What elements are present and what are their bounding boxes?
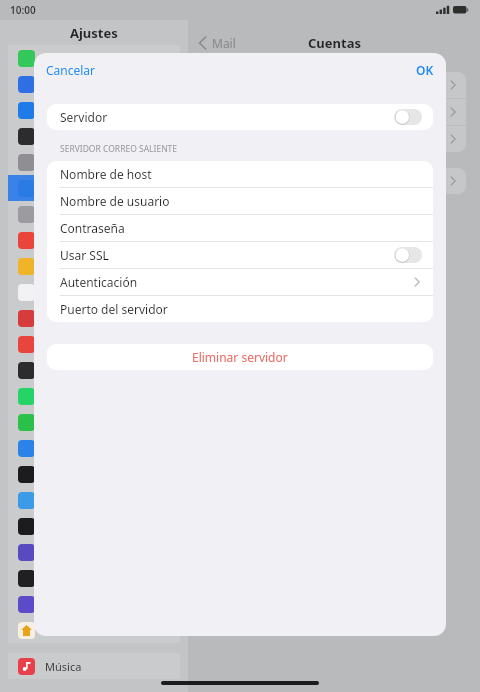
other: Abrir	[450, 134, 456, 144]
button[interactable]: Música	[18, 653, 180, 679]
button[interactable]	[18, 435, 180, 461]
button[interactable]: OK	[409, 58, 441, 82]
staticText: Cuentas	[308, 34, 361, 52]
staticText: Nombre de usuario	[60, 193, 170, 209]
button[interactable]: Eliminar servidor	[47, 344, 433, 370]
button[interactable]	[18, 279, 180, 305]
button[interactable]	[18, 253, 180, 279]
button[interactable]	[18, 383, 180, 409]
button[interactable]	[18, 357, 180, 383]
button[interactable]	[18, 71, 180, 97]
button[interactable]	[18, 45, 180, 71]
button[interactable]: Contraseña	[47, 215, 433, 241]
button[interactable]	[18, 409, 180, 435]
button[interactable]: Cancelar	[39, 58, 103, 82]
button[interactable]	[18, 591, 180, 617]
other: Abrir	[414, 277, 420, 287]
button[interactable]: Nombre de usuario	[47, 188, 433, 214]
staticText: SERVIDOR CORREO SALIENTE	[60, 143, 178, 155]
staticText: Mail	[212, 35, 236, 51]
staticText: Casa	[45, 623, 70, 638]
button[interactable]	[18, 539, 180, 565]
button[interactable]	[18, 149, 180, 175]
staticText: Ajustes	[70, 24, 118, 42]
staticText: Contraseña	[60, 220, 125, 236]
button[interactable]	[18, 201, 180, 227]
button[interactable]	[18, 227, 180, 253]
staticText: OK	[416, 62, 434, 78]
staticText: Nombre de host	[60, 166, 152, 182]
button[interactable]: Activar	[394, 109, 422, 125]
button[interactable]	[18, 331, 180, 357]
staticText: Puerto del servidor	[60, 301, 168, 317]
button[interactable]: Usar SSL	[47, 242, 433, 268]
button[interactable]	[18, 461, 180, 487]
button[interactable]	[18, 305, 180, 331]
button[interactable]: Puerto del servidor	[47, 296, 433, 322]
button[interactable]: Autenticación	[47, 269, 433, 295]
staticText: Autenticación	[60, 274, 138, 290]
button[interactable]	[18, 513, 180, 539]
button[interactable]	[18, 565, 180, 591]
other: Abrir	[450, 107, 456, 117]
button[interactable]	[18, 97, 180, 123]
staticText: Música	[45, 659, 82, 674]
other: Abrir	[450, 176, 456, 186]
staticText: Cancelar	[46, 62, 96, 78]
button[interactable]: Activar	[394, 247, 422, 263]
staticText: 10:00	[10, 3, 36, 17]
staticText: Usar SSL	[60, 247, 109, 263]
button[interactable]	[18, 175, 180, 201]
staticText: Servidor	[60, 109, 108, 125]
other: Abrir	[450, 80, 456, 90]
staticText: Eliminar servidor	[192, 349, 288, 365]
button[interactable]	[18, 123, 180, 149]
button[interactable]: Servidor	[47, 104, 433, 130]
button[interactable]: Nombre de host	[47, 161, 433, 187]
button[interactable]: Casa	[18, 617, 180, 643]
button[interactable]	[18, 487, 180, 513]
